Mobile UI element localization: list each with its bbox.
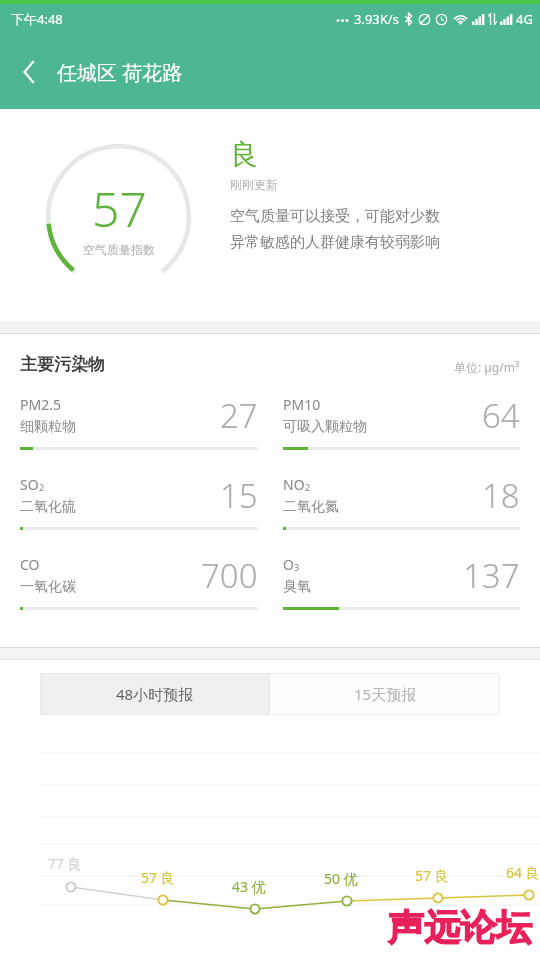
staticText: CO xyxy=(20,555,40,574)
staticText: 一氧化碳 xyxy=(20,578,76,596)
button[interactable]: O xyxy=(283,553,520,633)
staticText: 空气质量可以接受，可能对少数 异常敏感的人群健康有较弱影响 xyxy=(230,207,440,251)
button[interactable]: PM10 xyxy=(283,393,520,473)
staticText: 单位: μg/m³ xyxy=(454,359,520,375)
staticText: 64 xyxy=(482,393,520,438)
staticText: 18 xyxy=(482,473,520,518)
staticText: 主要污染物 xyxy=(20,354,105,375)
staticText: PM10 xyxy=(283,395,321,414)
staticText: 臭氧 xyxy=(283,578,311,596)
button[interactable]: NO xyxy=(283,473,520,553)
staticText: NO xyxy=(283,475,305,494)
staticText: 2 xyxy=(39,481,45,493)
staticText: 77 良 xyxy=(48,854,82,873)
staticText: 57 xyxy=(92,176,147,241)
staticText: 4G xyxy=(516,10,533,28)
button[interactable]: PM2.5 xyxy=(20,393,258,473)
button[interactable]: Back xyxy=(5,48,53,96)
staticText: 2 xyxy=(305,481,311,493)
staticText: SO xyxy=(20,475,39,494)
staticText: 细颗粒物 xyxy=(20,418,76,436)
button[interactable]: 48小时预报 xyxy=(40,673,269,715)
staticText: 二氧化氮 xyxy=(283,498,339,516)
staticText: 57 良 xyxy=(141,868,175,887)
staticText: 64 良 xyxy=(506,863,540,882)
staticText: 3.93K/s xyxy=(354,10,399,28)
staticText: 700 xyxy=(201,553,258,598)
button[interactable]: 15天预报 xyxy=(270,673,500,715)
staticText: 43 优 xyxy=(232,877,266,896)
staticText: 声远论坛 xyxy=(388,905,532,950)
staticText: 良 xyxy=(230,137,258,172)
staticText: 任城区 荷花路 xyxy=(57,59,183,86)
staticText: 可吸入颗粒物 xyxy=(283,418,367,436)
staticText: 刚刚更新 xyxy=(230,177,278,192)
staticText: PM2.5 xyxy=(20,395,61,414)
staticText: 137 xyxy=(463,553,520,598)
staticText: 15 xyxy=(220,473,258,518)
staticText: 27 xyxy=(220,393,258,438)
button[interactable]: SO xyxy=(20,473,258,553)
staticText: 空气质量指数 xyxy=(83,242,155,257)
staticText: 下午4:48 xyxy=(11,10,63,28)
staticText: 3 xyxy=(294,561,300,573)
staticText: 二氧化硫 xyxy=(20,498,76,516)
staticText: O xyxy=(283,555,294,574)
staticText: 57 良 xyxy=(415,866,449,885)
staticText: 48小时预报 xyxy=(116,684,194,704)
staticText: 15天预报 xyxy=(354,684,417,704)
staticText: 50 优 xyxy=(324,869,358,888)
button[interactable]: CO xyxy=(20,553,258,633)
